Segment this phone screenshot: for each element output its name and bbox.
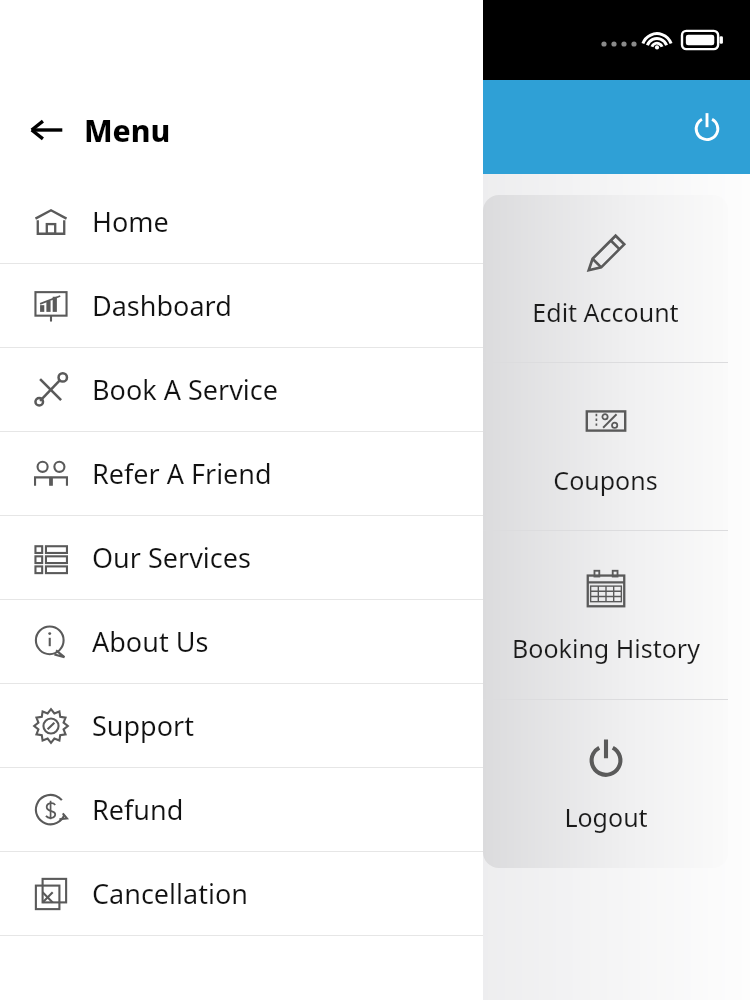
button[interactable]: Coupons: [483, 363, 728, 530]
button[interactable]: About Us: [0, 600, 483, 683]
button[interactable]: Our Services: [0, 516, 483, 599]
staticText: Logout: [564, 800, 648, 834]
staticText: Our Services: [92, 539, 251, 576]
staticText: Refer A Friend: [92, 455, 272, 492]
button[interactable]: Refund: [0, 768, 483, 851]
staticText: Edit Account: [532, 295, 679, 329]
button[interactable]: Booking History: [483, 531, 728, 699]
staticText: About Us: [92, 623, 209, 660]
button[interactable]: Dashboard: [0, 264, 483, 347]
button[interactable]: Edit Account: [483, 195, 728, 362]
button[interactable]: Power: [681, 101, 733, 153]
other: Back: [30, 113, 64, 147]
button[interactable]: Home: [0, 180, 483, 263]
button[interactable]: Back: [0, 80, 483, 180]
staticText: Menu: [84, 110, 171, 151]
staticText: Coupons: [553, 463, 658, 497]
button[interactable]: Cancellation: [0, 852, 483, 935]
staticText: Book A Service: [92, 371, 279, 408]
staticText: Support: [92, 707, 194, 744]
button[interactable]: Support: [0, 684, 483, 767]
staticText: Home: [92, 203, 169, 240]
staticText: Refund: [92, 791, 184, 828]
staticText: Cancellation: [92, 875, 248, 912]
button[interactable]: Book A Service: [0, 348, 483, 431]
button[interactable]: Logout: [483, 700, 728, 868]
staticText: Booking History: [512, 631, 700, 665]
button[interactable]: Refer A Friend: [0, 432, 483, 515]
staticText: Dashboard: [92, 287, 232, 324]
